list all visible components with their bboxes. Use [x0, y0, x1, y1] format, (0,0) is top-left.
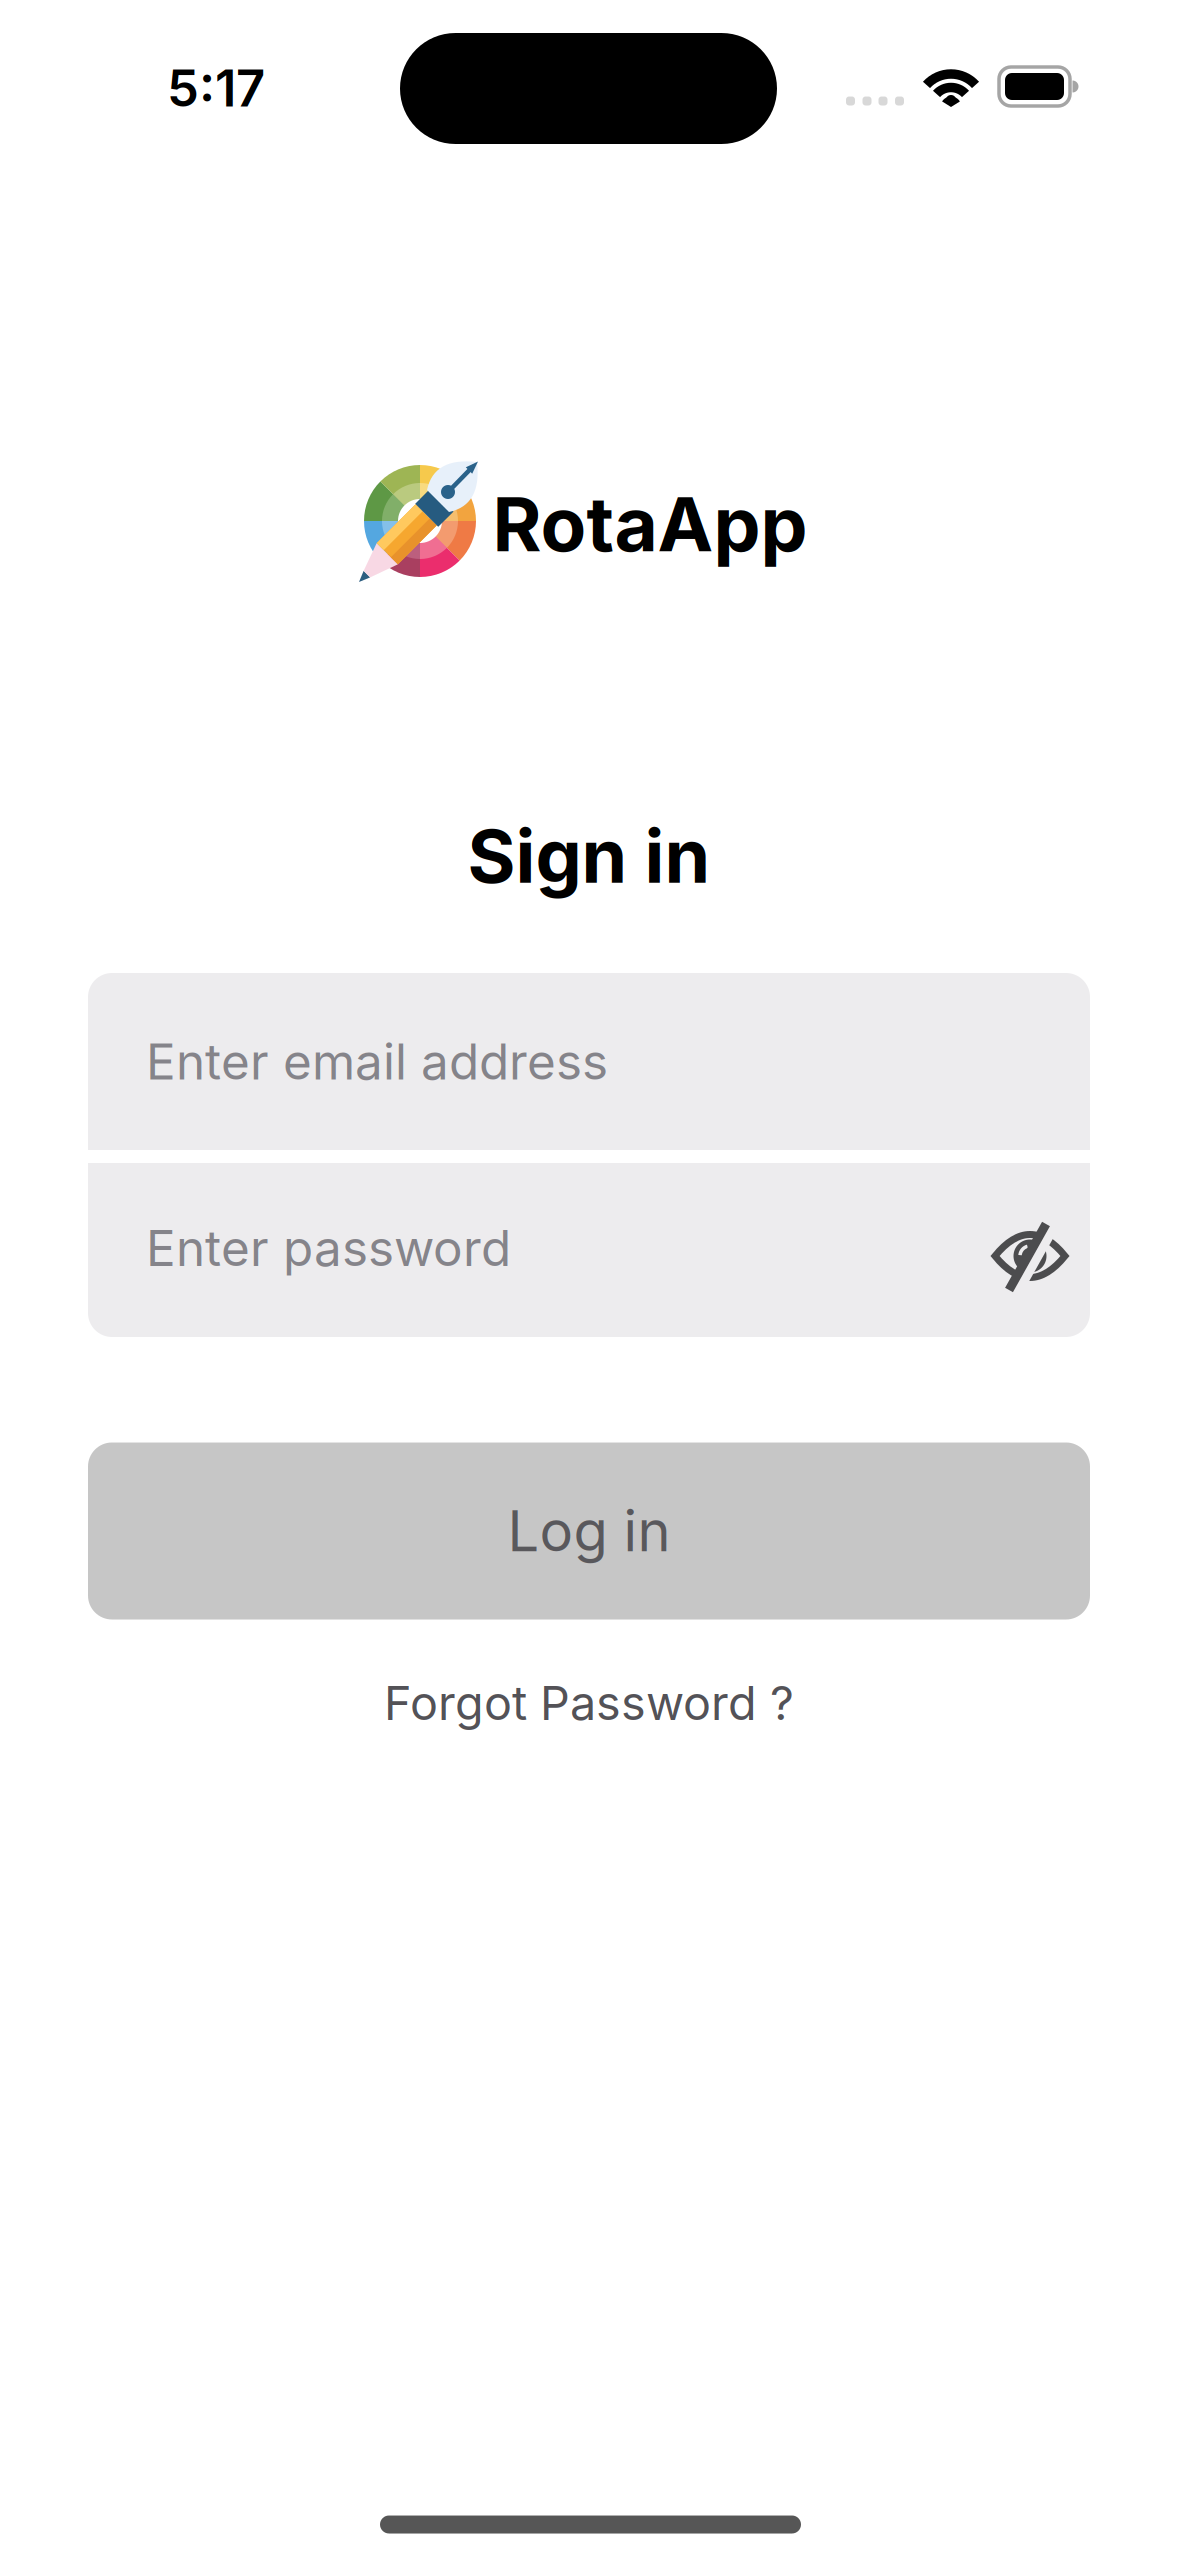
- button[interactable]: Forgot Password ?: [384, 1675, 794, 1731]
- button[interactable]: [985, 1211, 1075, 1301]
- button[interactable]: Enter password: [88, 1163, 1090, 1337]
- button[interactable]: Log in: [88, 1442, 1090, 1619]
- staticText: Forgot Password ?: [384, 1675, 794, 1731]
- button[interactable]: Enter email address: [88, 973, 1090, 1150]
- staticText: RotaApp: [492, 480, 807, 568]
- staticText: Log in: [507, 1498, 670, 1564]
- staticText: Enter password: [146, 1219, 511, 1277]
- staticText: Sign in: [467, 813, 710, 899]
- staticText: Enter email address: [146, 1032, 608, 1091]
- staticText: 5:17: [167, 58, 265, 118]
